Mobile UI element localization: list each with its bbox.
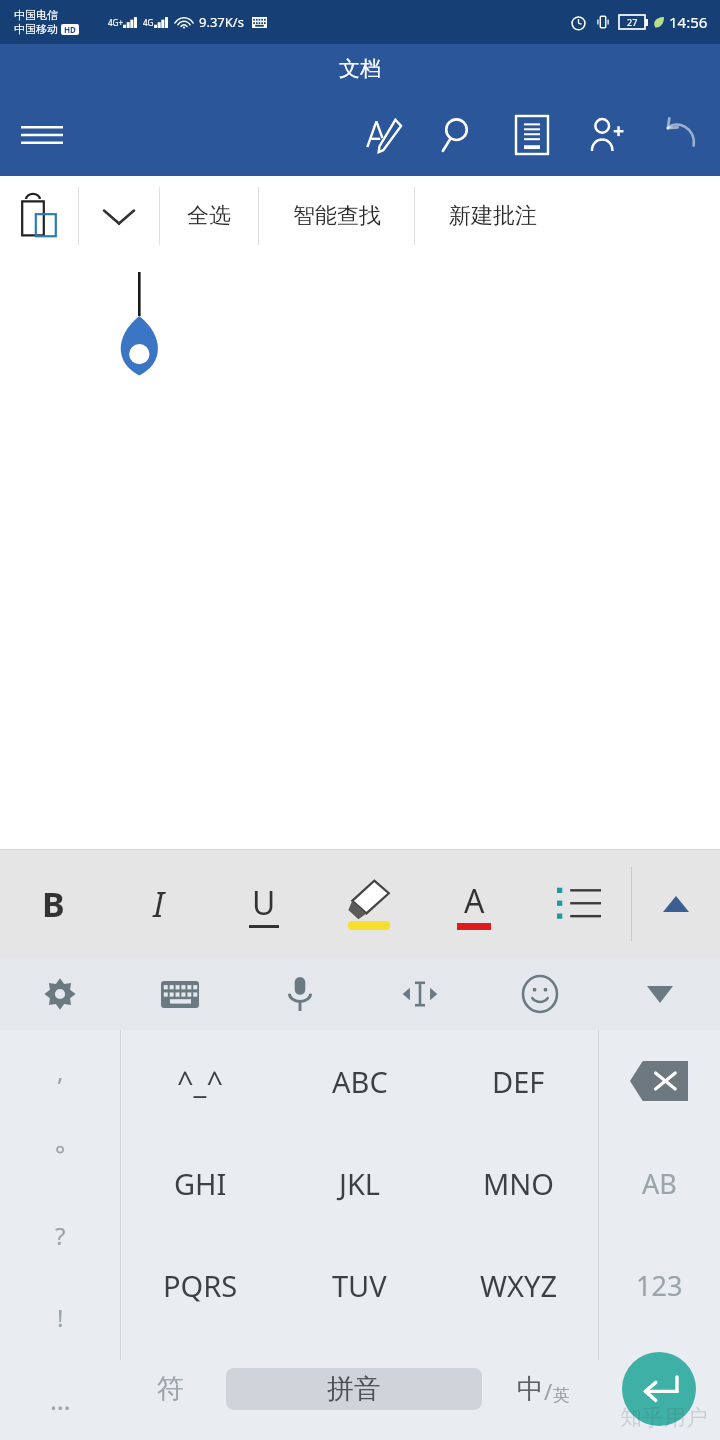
button[interactable]: … <box>0 1358 120 1440</box>
staticText: 4G <box>143 17 154 28</box>
staticText: 4G+ <box>108 17 123 28</box>
staticText: GHI <box>174 1164 227 1203</box>
button[interactable]: Share <box>580 109 632 161</box>
button[interactable]: Hide keyboard <box>600 958 720 1030</box>
button[interactable]: More <box>79 176 159 256</box>
staticText: 123 <box>636 1267 683 1304</box>
button[interactable]: Delete <box>598 1030 720 1132</box>
staticText: WXYZ <box>480 1266 557 1305</box>
button[interactable]: DEF <box>439 1030 598 1132</box>
button[interactable]: Enter <box>622 1352 696 1426</box>
staticText: 文档 <box>339 56 381 82</box>
button[interactable]: Collapse <box>632 850 720 958</box>
button[interactable]: Menu <box>14 107 70 163</box>
staticText: JKL <box>339 1164 381 1203</box>
staticText: AB <box>642 1165 677 1202</box>
staticText: ABC <box>332 1062 388 1101</box>
staticText: U <box>252 881 276 925</box>
button[interactable]: 新建批注 <box>415 176 570 256</box>
staticText: ! <box>57 1301 64 1334</box>
staticText: 9.37K/s <box>199 13 244 31</box>
staticText: 英 <box>553 1385 570 1406</box>
button[interactable]: ° <box>0 1112 120 1194</box>
button[interactable]: Outline <box>506 109 558 161</box>
button[interactable]: JKL <box>280 1132 439 1234</box>
staticText: 中国移动 <box>14 22 58 36</box>
staticText: ? <box>55 1219 66 1252</box>
button[interactable]: Settings <box>0 958 120 1030</box>
button[interactable]: TUV <box>280 1234 439 1337</box>
button[interactable]: Search <box>432 109 484 161</box>
staticText: DEF <box>492 1062 545 1101</box>
staticText: 中国电信 <box>14 8 58 22</box>
button[interactable]: 智能查找 <box>259 176 414 256</box>
staticText: ° <box>55 1137 66 1170</box>
staticText: 新建批注 <box>449 202 537 230</box>
button[interactable]: 符 <box>120 1337 220 1440</box>
button[interactable]: Bullet list <box>526 850 631 958</box>
staticText: I <box>153 881 165 927</box>
staticText: 27 <box>627 16 638 28</box>
staticText: 智能查找 <box>293 202 381 230</box>
button[interactable]: Bold <box>0 850 106 958</box>
button[interactable]: Highlight <box>316 850 421 958</box>
staticText: / <box>544 1376 553 1406</box>
button[interactable]: AB <box>598 1132 720 1234</box>
staticText: 中 <box>517 1372 544 1406</box>
button[interactable]: Font color <box>421 850 526 958</box>
button[interactable]: MNO <box>439 1132 598 1234</box>
button[interactable]: Paste <box>0 176 78 256</box>
button[interactable]: Draw <box>358 109 410 161</box>
staticText: 知乎用户 <box>620 1404 708 1432</box>
button[interactable]: ^_^ <box>120 1030 280 1132</box>
button[interactable]: 中 <box>488 1337 598 1440</box>
staticText: A <box>464 879 485 923</box>
button[interactable]: Voice input <box>240 958 360 1030</box>
staticText: ^_^ <box>177 1062 224 1101</box>
staticText: TUV <box>332 1266 387 1305</box>
staticText: 符 <box>157 1372 184 1406</box>
button[interactable]: PQRS <box>120 1234 280 1337</box>
button[interactable]: Keyboard layout <box>120 958 240 1030</box>
button[interactable]: 123 <box>598 1234 720 1337</box>
button[interactable]: WXYZ <box>439 1234 598 1337</box>
button[interactable]: 拼音 <box>226 1368 482 1410</box>
staticText: 拼音 <box>327 1372 381 1406</box>
button[interactable]: Italic <box>106 850 211 958</box>
button[interactable]: Underline <box>211 850 316 958</box>
staticText: 14:56 <box>669 12 708 32</box>
staticText: PQRS <box>163 1266 238 1305</box>
staticText: 全选 <box>187 202 231 230</box>
button[interactable]: ! <box>0 1276 120 1358</box>
staticText: B <box>42 881 65 927</box>
button[interactable]: Emoji <box>480 958 600 1030</box>
staticText: MNO <box>483 1164 554 1203</box>
button[interactable]: ? <box>0 1194 120 1276</box>
staticText: HD <box>64 24 76 35</box>
button[interactable]: Move cursor <box>360 958 480 1030</box>
button[interactable]: Undo <box>654 109 706 161</box>
staticText: , <box>57 1055 64 1088</box>
button[interactable]: 全选 <box>160 176 258 256</box>
staticText: … <box>50 1382 71 1417</box>
button[interactable]: ABC <box>280 1030 439 1132</box>
button[interactable]: GHI <box>120 1132 280 1234</box>
